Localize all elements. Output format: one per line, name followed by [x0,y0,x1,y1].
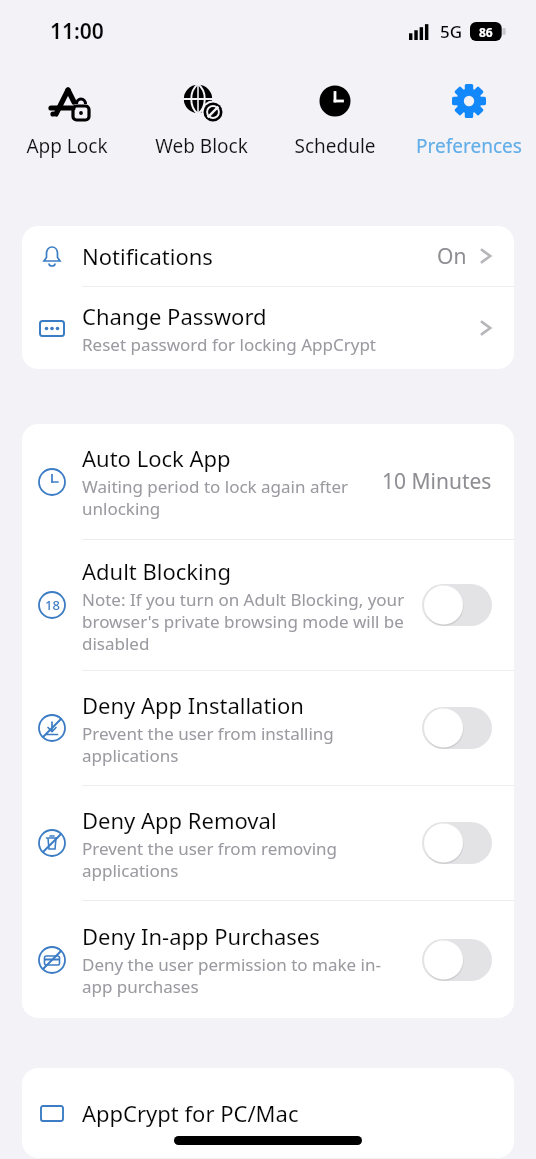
button[interactable]: AppCrypt for PC/Mac [22,1068,514,1158]
staticText: 11:00 [50,17,104,46]
staticText: Waiting period to lock again after unloc… [82,475,372,520]
staticText: Adult Blocking [82,556,231,586]
staticText: On [437,242,467,271]
staticText: AppCrypt for PC/Mac [82,1098,492,1128]
staticText: Note: If you turn on Adult Blocking, you… [82,588,408,655]
button[interactable]: Toggle [422,822,492,864]
staticText: Reset password for locking AppCrypt [82,333,376,356]
staticText: Deny the user permission to make in-app … [82,953,408,998]
staticText: Deny App Removal [82,805,277,835]
staticText: 18 [45,596,60,614]
button[interactable]: Preferences [402,62,536,172]
button[interactable]: Deny App Installation [22,671,514,785]
button[interactable]: Toggle [422,939,492,981]
staticText: 10 Minutes [382,467,492,496]
staticText: Prevent the user from installing applica… [82,722,408,767]
staticText: Deny App Installation [82,690,304,720]
staticText: Change Password [82,301,267,331]
button[interactable]: Web Block [134,62,268,172]
button[interactable]: Auto Lock App [22,424,514,539]
staticText: Deny In-app Purchases [82,921,320,951]
staticText: 5G [440,20,463,43]
staticText: 86 [479,24,493,40]
button[interactable]: Notifications [22,226,514,286]
button[interactable]: App Lock [0,62,134,172]
button[interactable]: Change Password [22,287,514,369]
button[interactable]: Toggle [422,584,492,626]
button[interactable]: 18 [22,540,514,670]
staticText: Schedule [294,133,376,159]
button[interactable]: Deny App Removal [22,786,514,900]
button[interactable]: Schedule [268,62,402,172]
staticText: App Lock [26,133,108,159]
staticText: Notifications [82,241,437,271]
staticText: Prevent the user from removing applicati… [82,837,408,882]
button[interactable]: Toggle [422,707,492,749]
staticText: Auto Lock App [82,443,231,473]
staticText: Web Block [155,133,248,159]
staticText: Preferences [416,133,522,159]
button[interactable]: Deny In-app Purchases [22,901,514,1018]
